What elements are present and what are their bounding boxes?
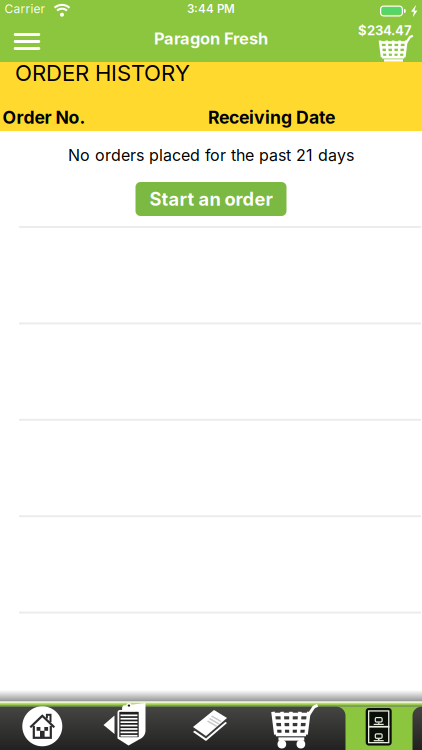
staticText: Carrier xyxy=(4,2,45,16)
staticText: $234.47 xyxy=(358,23,412,38)
staticText: Paragon Fresh xyxy=(154,29,268,48)
button[interactable] xyxy=(0,707,84,750)
button[interactable]: Start an order xyxy=(135,182,286,216)
button[interactable] xyxy=(253,707,338,750)
button[interactable] xyxy=(169,707,253,750)
button[interactable] xyxy=(84,707,169,750)
staticText: Order No. xyxy=(2,107,85,127)
button[interactable] xyxy=(7,26,47,56)
button[interactable] xyxy=(338,707,422,750)
button[interactable]: $234.47 xyxy=(356,22,414,64)
staticText: 3:44 PM xyxy=(187,2,235,15)
staticText: No orders placed for the past 21 days xyxy=(68,146,354,165)
staticText: ORDER HISTORY xyxy=(15,60,190,86)
staticText: Start an order xyxy=(149,188,272,210)
staticText: Receiving Date xyxy=(208,107,335,127)
